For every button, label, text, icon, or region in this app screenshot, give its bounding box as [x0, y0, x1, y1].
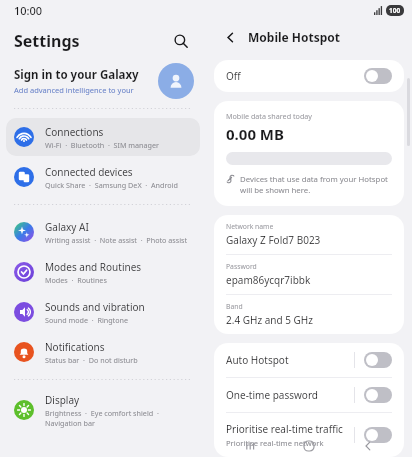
- staticText: Network name: [226, 222, 274, 231]
- staticText: Galaxy Z Fold7 B023: [226, 233, 321, 247]
- staticText: Galaxy AI: [45, 220, 89, 234]
- button[interactable]: Password: [214, 255, 404, 294]
- button[interactable]: Prioritise real-time traffic: [214, 413, 404, 457]
- button[interactable]: One-time password: [214, 378, 404, 412]
- button[interactable]: Sign in to your Galaxy: [0, 56, 206, 106]
- staticText: 2.4 GHz and 5 GHz: [226, 313, 313, 327]
- staticText: Status bar · Do not disturb: [45, 355, 138, 365]
- button[interactable]: Toggle: [364, 352, 392, 368]
- staticText: Connected devices: [45, 165, 133, 179]
- staticText: 0.00 MB: [226, 124, 284, 144]
- staticText: Modes · Routines: [45, 275, 107, 285]
- staticText: epam86ycqr7ibbk: [226, 273, 311, 287]
- staticText: Band: [226, 302, 243, 311]
- button[interactable]: Back: [220, 27, 240, 47]
- button[interactable]: Toggle: [364, 427, 392, 443]
- staticText: 10:00: [14, 3, 43, 18]
- staticText: Mobile data shared today: [226, 111, 313, 121]
- staticText: Add advanced intelligence to your phone.: [14, 85, 158, 95]
- button[interactable]: Display: [6, 388, 200, 432]
- staticText: Writing assist · Note assist · Photo ass…: [45, 235, 188, 245]
- button[interactable]: Toggle: [364, 68, 392, 84]
- staticText: Sound mode · Ringtone: [45, 315, 129, 325]
- staticText: Settings: [14, 30, 80, 52]
- staticText: Display: [45, 393, 80, 407]
- button[interactable]: Modes and Routines: [6, 253, 200, 291]
- staticText: 100: [389, 6, 401, 15]
- button[interactable]: Auto Hotspot: [214, 343, 404, 377]
- staticText: Off: [226, 69, 364, 83]
- staticText: One-time password: [226, 388, 318, 402]
- staticText: Sounds and vibration: [45, 300, 145, 314]
- button[interactable]: Home: [294, 435, 324, 457]
- button[interactable]: Off: [214, 60, 404, 92]
- staticText: Wi-Fi · Bluetooth · SIM manager: [45, 140, 160, 150]
- staticText: Brightness · Eye comfort shield · Naviga…: [45, 408, 192, 428]
- staticText: Prioritise real-time traffic: [226, 422, 343, 436]
- staticText: Password: [226, 262, 257, 271]
- staticText: Auto Hotspot: [226, 353, 289, 367]
- staticText: Quick Share · Samsung DeX · Android Auto: [45, 180, 192, 190]
- button[interactable]: Connections: [6, 118, 200, 156]
- button[interactable]: Search: [168, 28, 194, 54]
- button[interactable]: Recents: [235, 435, 265, 457]
- button[interactable]: Back: [353, 435, 383, 457]
- staticText: Notifications: [45, 340, 105, 354]
- button[interactable]: Connected devices: [6, 158, 200, 196]
- button[interactable]: Notifications: [6, 333, 200, 371]
- button[interactable]: Sounds and vibration: [6, 293, 200, 331]
- button[interactable]: Network name: [214, 215, 404, 254]
- staticText: Modes and Routines: [45, 260, 142, 274]
- staticText: Connections: [45, 125, 104, 139]
- staticText: Sign in to your Galaxy: [14, 67, 139, 83]
- staticText: Devices that use data from your Hotspot …: [240, 174, 392, 196]
- staticText: Mobile Hotspot: [248, 29, 341, 45]
- button[interactable]: Toggle: [364, 387, 392, 403]
- button[interactable]: Band: [214, 295, 404, 334]
- staticText: Prioritise real-time network traffic suc…: [226, 438, 346, 448]
- button[interactable]: Galaxy AI: [6, 213, 200, 251]
